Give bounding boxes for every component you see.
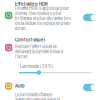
button[interactable]: Activer <box>83 84 96 91</box>
staticText: La luminosité change automatiquement sel… <box>15 92 60 100</box>
button[interactable]: Activer <box>83 14 96 21</box>
staticText: Un effet HDR s'applique pour donner des … <box>15 6 71 31</box>
staticText: Auto <box>15 83 25 89</box>
staticText: Effet vidéo HDR <box>15 2 48 7</box>
staticText: Luminosité (30%) <box>20 64 54 69</box>
staticText: Confort visuel <box>15 37 45 43</box>
staticText: Réduire l'effort visuel en réduisant la … <box>15 44 63 59</box>
